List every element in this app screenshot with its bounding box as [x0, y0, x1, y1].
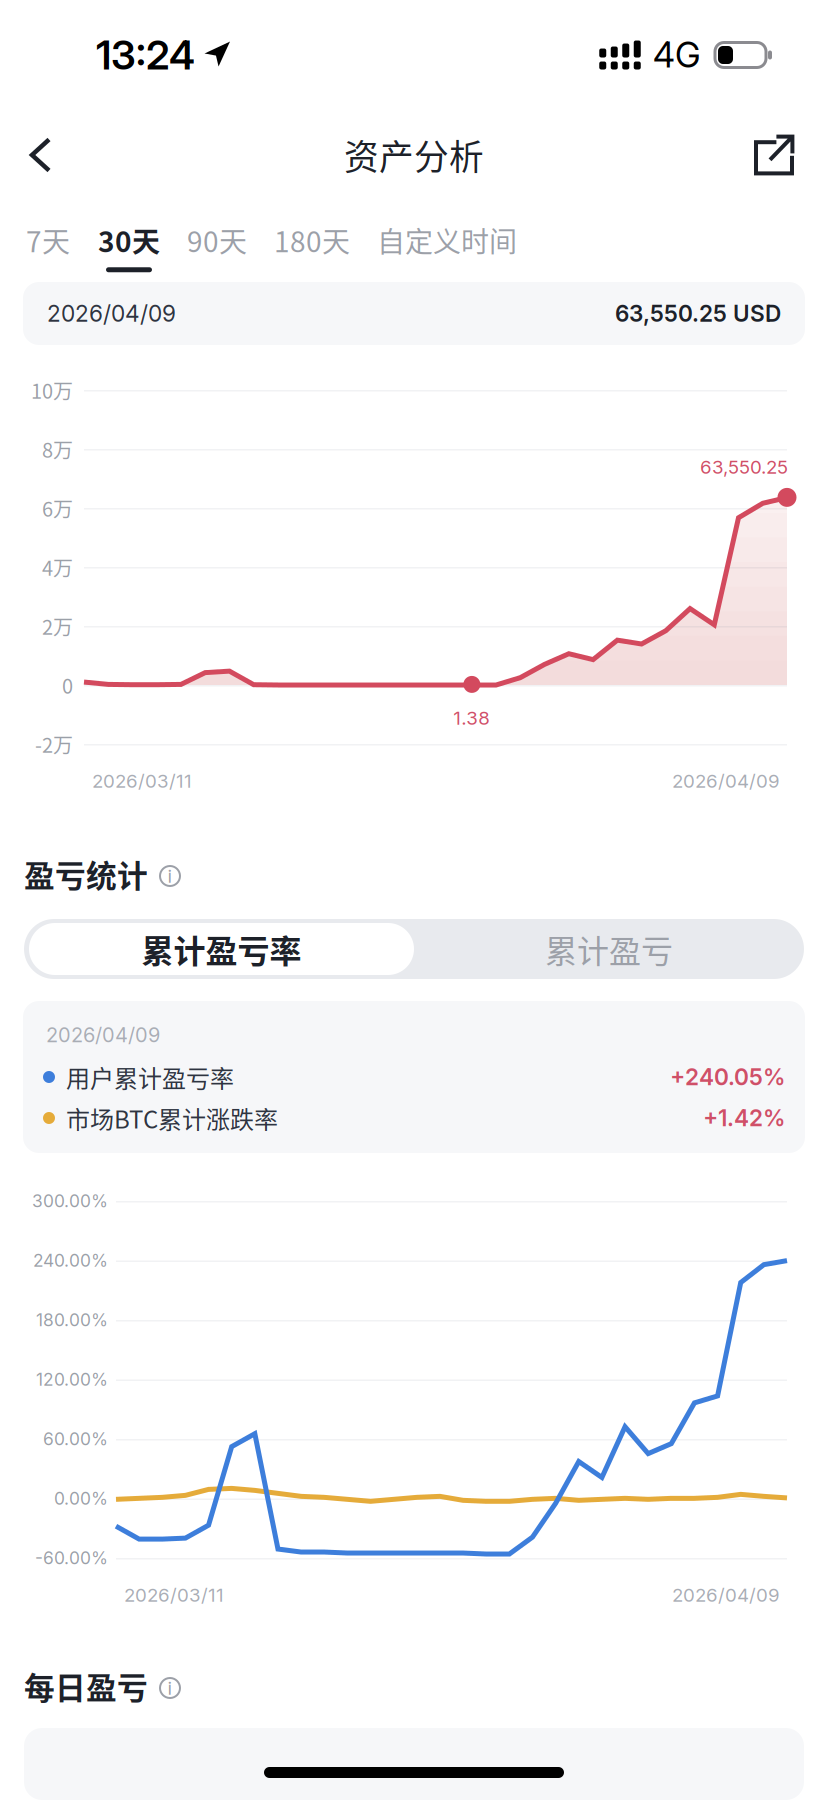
- staticText: 7天: [26, 220, 70, 260]
- staticText: 资产分析: [344, 130, 484, 180]
- staticText: 180.00%: [36, 1309, 108, 1330]
- staticText: -2万: [35, 729, 73, 758]
- staticText: 2026/04/09: [672, 1584, 780, 1606]
- staticText: 0.00%: [54, 1488, 108, 1509]
- staticText: 60.00%: [43, 1428, 108, 1449]
- staticText: 每日盈亏: [24, 1664, 148, 1708]
- button[interactable]: 累计盈亏率: [24, 923, 414, 975]
- staticText: 180天: [274, 220, 350, 260]
- staticText: 8万: [42, 434, 73, 463]
- staticText: 2026/04/09: [47, 300, 176, 327]
- staticText: 用户累计盈亏率: [66, 1060, 234, 1094]
- staticText: 63,550.25 USD: [615, 300, 781, 327]
- button[interactable]: Back: [0, 117, 89, 192]
- staticText: -60.00%: [35, 1547, 108, 1568]
- staticText: +240.05%: [670, 1063, 785, 1091]
- staticText: 累计盈亏: [545, 926, 673, 972]
- staticText: 13:24: [96, 31, 195, 79]
- staticText: 2026/04/09: [46, 1023, 160, 1047]
- staticText: 90天: [187, 220, 247, 260]
- staticText: 2026/04/09: [672, 770, 780, 792]
- button[interactable]: 180天: [274, 210, 377, 272]
- staticText: 市场BTC累计涨跌率: [66, 1101, 278, 1135]
- staticText: 4G: [653, 34, 701, 76]
- button[interactable]: Share: [714, 113, 828, 197]
- staticText: 300.00%: [32, 1190, 108, 1211]
- staticText: 2万: [42, 611, 73, 640]
- staticText: 240.00%: [33, 1250, 108, 1271]
- staticText: 累计盈亏率: [141, 926, 301, 972]
- staticText: 盈亏统计: [24, 852, 148, 896]
- staticText: 6万: [42, 493, 73, 522]
- staticText: 2026/03/11: [92, 770, 192, 792]
- staticText: +1.42%: [703, 1104, 785, 1132]
- staticText: 30天: [98, 220, 160, 260]
- staticText: 自定义时间: [377, 220, 517, 260]
- button[interactable]: 7天: [25, 210, 98, 272]
- button[interactable]: 90天: [187, 210, 274, 272]
- staticText: 120.00%: [36, 1369, 108, 1390]
- staticText: 10万: [31, 375, 73, 404]
- staticText: 2026/03/11: [124, 1584, 224, 1606]
- staticText: 4万: [42, 552, 73, 581]
- staticText: 63,550.25: [700, 456, 788, 478]
- staticText: i: [167, 1677, 172, 1699]
- staticText: 0: [62, 670, 73, 699]
- staticText: i: [167, 865, 172, 887]
- button[interactable]: 自定义时间: [377, 210, 544, 272]
- staticText: 1.38: [453, 707, 490, 729]
- button[interactable]: 30天: [98, 210, 187, 272]
- button[interactable]: 累计盈亏: [414, 923, 804, 975]
